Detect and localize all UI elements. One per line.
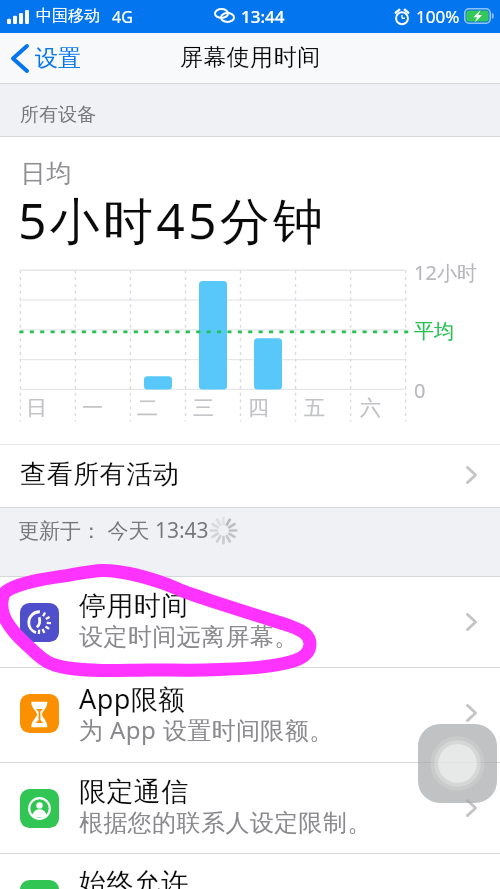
staticText: 日均 [20, 158, 72, 189]
button[interactable]: App限额 [0, 668, 500, 763]
button[interactable]: 始终允许 [0, 854, 500, 889]
staticText: 0 [414, 377, 426, 404]
staticText: 5小时45分钟 [18, 186, 327, 254]
staticText: 12小时 [414, 259, 477, 286]
button[interactable]: 查看所有活动 [0, 444, 500, 507]
button[interactable]: 返回设置 [0, 38, 95, 79]
staticText: 日 [26, 395, 47, 421]
staticText: 设置 [35, 44, 81, 73]
staticText: 设定时间远离屏幕。 [79, 622, 299, 652]
staticText: 所有设备 [20, 103, 96, 127]
staticText: 更新于： 今天 13:43 [18, 516, 209, 545]
staticText: 停用时间 [79, 589, 189, 623]
staticText: 五 [304, 395, 325, 421]
button[interactable]: 停用时间 [0, 577, 500, 668]
staticText: 4G [112, 6, 133, 28]
staticText: 四 [248, 395, 269, 421]
staticText: 始终允许 [79, 866, 189, 889]
staticText: 根据您的联系人设定限制。 [79, 808, 372, 838]
staticText: 限定通信 [79, 775, 189, 809]
button[interactable]: AssistiveTouch [418, 724, 497, 803]
staticText: 六 [360, 395, 381, 421]
staticText: 屏幕使用时间 [180, 43, 321, 72]
staticText: 平均 [414, 319, 454, 344]
staticText: 13:44 [241, 5, 285, 28]
staticText: 二 [137, 395, 158, 421]
staticText: 100% [416, 5, 460, 28]
staticText: 查看所有活动 [20, 458, 180, 491]
staticText: 中国移动 [36, 6, 100, 26]
staticText: App限额 [79, 680, 186, 717]
staticText: 三 [193, 395, 214, 421]
staticText: 为 App 设置时间限额。 [79, 713, 334, 746]
button[interactable]: 限定通信 [0, 763, 500, 854]
staticText: 一 [82, 395, 103, 421]
